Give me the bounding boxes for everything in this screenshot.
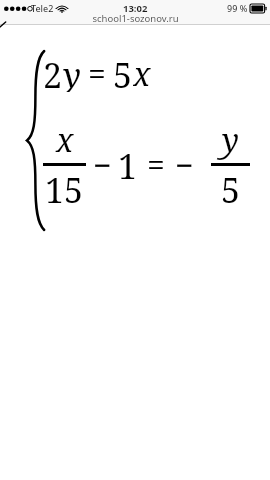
staticText: 13:02 (123, 2, 148, 15)
staticText: 99 % (227, 2, 248, 14)
staticText: Tele2 (31, 2, 54, 14)
staticText: y (222, 118, 239, 162)
staticText: = (147, 143, 165, 179)
staticText: 15 (45, 167, 84, 213)
staticText: x (56, 118, 74, 162)
staticText: = (88, 52, 106, 92)
staticText: x (133, 52, 151, 92)
staticText: 5 (113, 52, 133, 92)
staticText: 1 (118, 143, 138, 179)
button[interactable]: school1-sozonov.ru (86, 11, 185, 26)
staticText: 5 (221, 167, 241, 213)
staticText: y (63, 52, 81, 92)
staticText: 2 (43, 52, 63, 92)
staticText: − (175, 143, 194, 179)
staticText: − (93, 143, 112, 179)
button[interactable]: Back (0, 22, 6, 29)
